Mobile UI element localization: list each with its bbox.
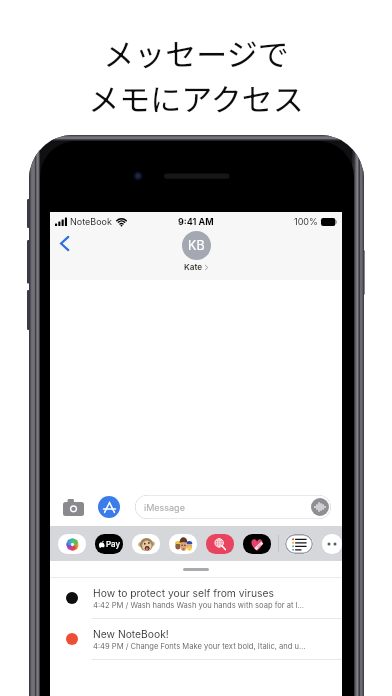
staticText: NoteBook [70, 216, 112, 227]
staticText: Pay [106, 539, 121, 549]
staticText: iMessage [144, 502, 185, 513]
button[interactable]: App [243, 534, 271, 554]
staticText: メモにアクセス [88, 75, 304, 120]
staticText: メッセージで [103, 30, 289, 75]
button[interactable]: App [285, 534, 313, 554]
staticText: 4:49 PM / Change Fonts Make your text bo… [93, 642, 306, 651]
staticText: Kate [184, 262, 203, 272]
button[interactable]: How to protect your self from viruses [50, 578, 342, 618]
staticText: 4:42 PM / Wash hands Wash you hands with… [93, 601, 305, 610]
staticText: KB [188, 238, 205, 253]
button[interactable]: App Store [98, 496, 120, 518]
button[interactable]: App [322, 534, 342, 554]
button[interactable]: New NoteBook! [50, 619, 342, 659]
button[interactable]: App [58, 534, 86, 554]
button[interactable]: App [95, 534, 123, 554]
staticText: 9:41 AM [178, 216, 214, 227]
button[interactable]: App [169, 534, 197, 554]
button[interactable]: iMessage [135, 495, 331, 519]
button[interactable]: App [132, 534, 160, 554]
button[interactable]: Back [51, 230, 77, 256]
button[interactable]: Camera [63, 496, 84, 518]
staticText: New NoteBook! [93, 628, 169, 640]
staticText: 100% [294, 216, 318, 227]
button[interactable]: App [206, 534, 234, 554]
staticText: How to protect your self from viruses [93, 587, 274, 599]
button[interactable]: KB [50, 231, 342, 272]
